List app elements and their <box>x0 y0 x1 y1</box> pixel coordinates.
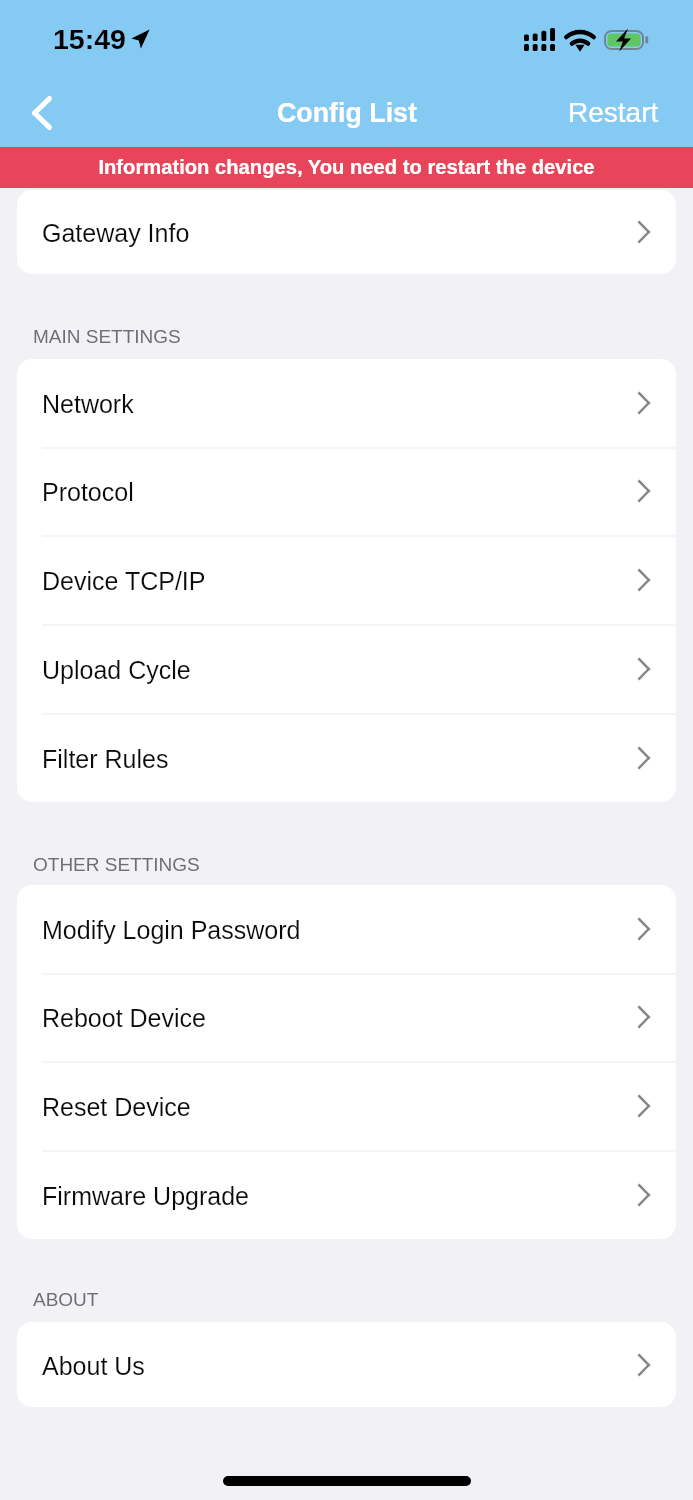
button[interactable]: Filter Rules <box>17 713 676 802</box>
staticText: 15:49 <box>53 23 126 55</box>
staticText: Firmware Upgrade <box>42 1182 250 1210</box>
button[interactable]: Firmware Upgrade <box>17 1150 676 1239</box>
staticText: Reset Device <box>42 1093 191 1121</box>
staticText: Information changes, You need to restart… <box>98 156 595 179</box>
staticText: Modify Login Password <box>42 916 301 944</box>
staticText: Protocol <box>42 478 134 506</box>
button[interactable]: Reboot Device <box>17 973 676 1061</box>
button[interactable]: Reset Device <box>17 1061 676 1150</box>
staticText: Network <box>42 390 134 418</box>
staticText: Reboot Device <box>42 1004 206 1032</box>
button[interactable]: Modify Login Password <box>17 885 676 973</box>
button[interactable]: About Us <box>17 1322 676 1407</box>
staticText: OTHER SETTINGS <box>33 854 200 875</box>
staticText: Restart <box>568 97 659 128</box>
button[interactable]: Restart <box>544 83 693 142</box>
staticText: Upload Cycle <box>42 656 191 684</box>
button[interactable]: Device TCP/IP <box>17 535 676 624</box>
staticText: Device TCP/IP <box>42 567 206 595</box>
button[interactable]: Back <box>17 88 67 138</box>
button[interactable]: Network <box>17 359 676 447</box>
staticText: Gateway Info <box>42 219 190 247</box>
staticText: MAIN SETTINGS <box>33 326 181 347</box>
staticText: Filter Rules <box>42 745 169 773</box>
staticText: Config List <box>277 98 417 128</box>
button[interactable]: Gateway Info <box>17 190 676 274</box>
button[interactable]: Upload Cycle <box>17 624 676 713</box>
staticText: About Us <box>42 1352 145 1380</box>
button[interactable]: Protocol <box>17 447 676 535</box>
staticText: ABOUT <box>33 1289 99 1310</box>
